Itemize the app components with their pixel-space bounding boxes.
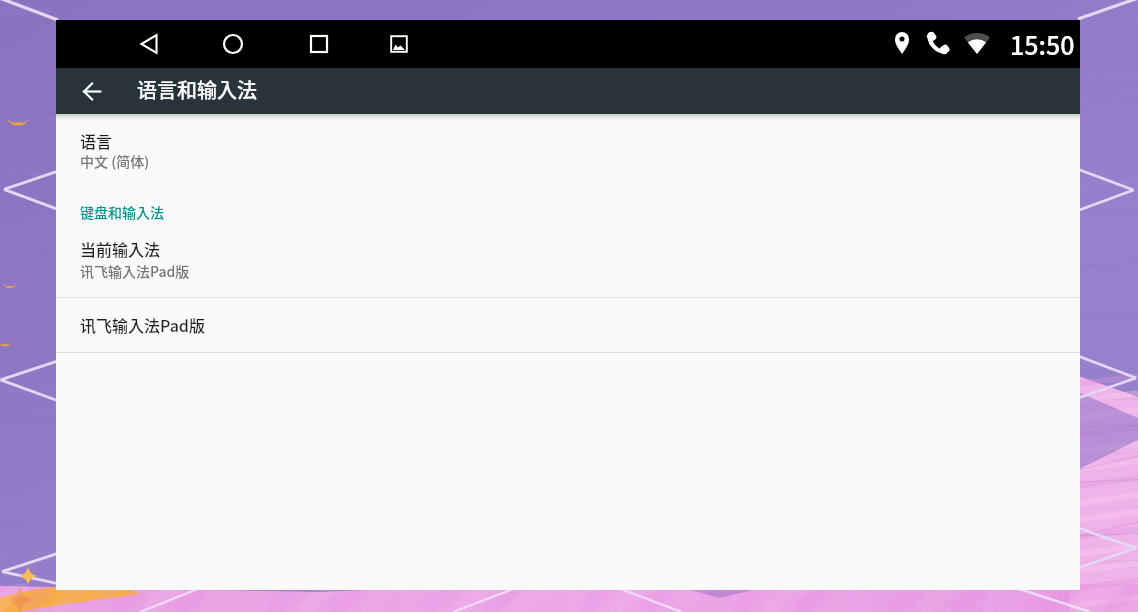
staticText: 键盘和输入法 <box>80 202 164 222</box>
button[interactable] <box>56 298 1080 352</box>
staticText: 15:50 <box>1010 26 1075 62</box>
staticText: 语言 <box>80 129 113 152</box>
button[interactable]: Screenshot <box>375 20 423 68</box>
staticText: 中文 (简体) <box>80 151 150 171</box>
staticText: 讯飞输入法Pad版 <box>80 313 205 336</box>
button[interactable]: Navigate up <box>68 68 116 114</box>
button[interactable]: Recent apps <box>295 20 343 68</box>
staticText: 语言和输入法 <box>137 75 257 104</box>
button[interactable] <box>56 230 1080 290</box>
button[interactable] <box>56 118 1080 176</box>
staticText: 讯飞输入法Pad版 <box>80 261 190 281</box>
button[interactable]: Back <box>125 20 173 68</box>
button[interactable]: Home <box>209 20 257 68</box>
staticText: 当前输入法 <box>80 237 161 260</box>
